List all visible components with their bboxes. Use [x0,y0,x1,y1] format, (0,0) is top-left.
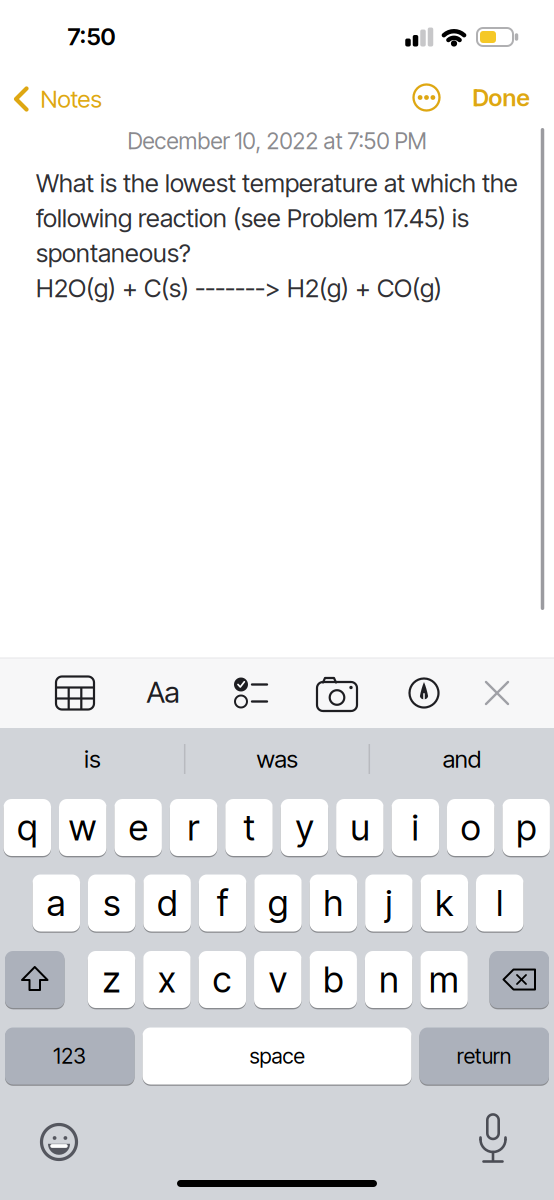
button[interactable]: b [309,951,357,1008]
staticText: What is the lowest temperature at which … [36,168,518,198]
button[interactable]: j [365,874,413,931]
button[interactable]: was [192,730,362,788]
staticText: r [188,806,200,849]
button[interactable]: is [7,730,177,788]
staticText: return [457,1043,512,1069]
staticText: v [269,958,287,1001]
button[interactable]: w [59,799,106,856]
staticText: y [295,806,313,849]
button[interactable] [228,671,272,715]
button[interactable]: Done [472,83,529,112]
button[interactable]: o [447,799,494,856]
staticText: b [323,958,343,1001]
button[interactable]: return [419,1027,549,1084]
staticText: c [213,958,232,1001]
staticText: following reaction (see Problem 17.45) i… [36,203,469,233]
button[interactable]: q [4,799,51,856]
staticText: December 10, 2022 at 7:50 PM [127,128,426,154]
staticText: a [47,882,66,924]
button[interactable]: space [142,1027,411,1084]
button[interactable]: y [281,799,328,856]
button[interactable] [412,83,440,111]
staticText: s [103,882,120,924]
staticText: Done [472,83,529,112]
button[interactable]: m [420,951,468,1008]
staticText: H2O(g) + C(s) -------‌> H2(g) + CO(g) [36,273,442,303]
button[interactable] [469,1112,517,1164]
staticText: j [385,882,392,924]
button[interactable] [402,671,446,715]
button[interactable]: r [170,799,217,856]
staticText: Aa [146,675,179,709]
button[interactable] [5,951,64,1008]
button[interactable]: n [365,951,412,1008]
staticText: p [516,806,536,849]
staticText: 123 [53,1043,86,1069]
button[interactable]: u [336,799,384,856]
staticText: space [249,1043,304,1069]
button[interactable] [489,951,549,1008]
button[interactable] [35,1118,83,1166]
staticText: o [461,806,481,849]
staticText: f [217,882,228,924]
button[interactable] [475,671,519,715]
button[interactable]: Notes [13,85,101,113]
button[interactable]: p [502,799,550,856]
staticText: u [350,806,369,849]
staticText: 7:50 [67,22,115,51]
staticText: and [443,745,481,773]
button[interactable]: i [392,799,439,856]
staticText: q [17,806,37,849]
staticText: i [412,806,419,849]
staticText: l [496,882,503,924]
button[interactable]: h [310,874,357,931]
button[interactable]: 123 [5,1027,134,1084]
staticText: x [158,958,176,1001]
staticText: m [429,958,459,1001]
button[interactable]: f [199,874,246,931]
button[interactable] [53,671,97,715]
button[interactable]: k [421,874,468,931]
staticText: w [69,806,97,849]
button[interactable]: l [476,874,523,931]
button[interactable]: x [143,951,191,1008]
button[interactable]: Aa [133,662,193,722]
button[interactable]: c [199,951,246,1008]
staticText: g [268,882,288,924]
button[interactable]: t [225,799,273,856]
staticText: e [129,806,148,849]
staticText: n [379,958,398,1001]
button[interactable]: d [143,874,191,931]
button[interactable]: e [114,799,162,856]
button[interactable]: g [254,874,302,931]
button[interactable]: and [377,730,547,788]
staticText: t [243,806,254,849]
staticText: d [157,882,177,924]
staticText: spontaneous? [36,238,191,268]
button[interactable] [315,671,359,715]
staticText: Notes [40,85,101,113]
button[interactable]: s [88,874,135,931]
staticText: h [323,882,343,924]
staticText: was [256,745,297,773]
staticText: k [435,882,453,924]
button[interactable]: v [254,951,301,1008]
staticText: is [84,745,100,773]
button[interactable]: a [32,874,80,931]
staticText: z [102,958,120,1001]
button[interactable]: z [88,951,135,1008]
